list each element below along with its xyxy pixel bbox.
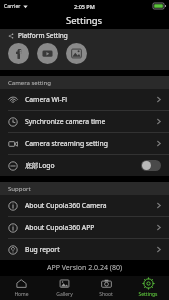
staticText: 底部Logo [25, 161, 141, 170]
button[interactable]: Weibo [66, 43, 87, 64]
staticText: About Cupola360 Camera [25, 201, 157, 210]
staticText: Settings [66, 14, 103, 27]
staticText: Carrier [4, 3, 21, 10]
staticText: 2:05 PM [74, 3, 95, 10]
button[interactable]: YouTube [37, 43, 58, 64]
staticText: Gallery [56, 291, 73, 298]
staticText: Shoot [99, 291, 113, 298]
button[interactable]: Settings [127, 276, 169, 300]
button[interactable]: Camera streaming setting [0, 133, 169, 154]
staticText: Settings [138, 291, 158, 298]
staticText: Home [14, 291, 29, 298]
button[interactable]: Gallery [43, 276, 85, 300]
button[interactable]: Home [0, 276, 43, 300]
button[interactable]: Shoot [85, 276, 127, 300]
button[interactable]: Camera Wi-Fi [0, 89, 169, 110]
button[interactable]: Facebook [8, 43, 29, 64]
button[interactable]: 底部Logo [0, 155, 169, 176]
staticText: Camera streaming setting [25, 139, 157, 148]
staticText: Camera Wi-Fi [25, 95, 157, 104]
button[interactable]: Toggle bottom logo [141, 160, 161, 171]
staticText: Support [8, 185, 31, 193]
staticText: Platform Setting [18, 31, 68, 40]
button[interactable]: Bug report [0, 239, 169, 260]
button[interactable]: About Cupola360 Camera [0, 195, 169, 216]
staticText: Synchronize camera time [25, 117, 157, 126]
staticText: APP Version 2.0.24 (80) [47, 263, 122, 273]
button[interactable]: About Cupola360 APP [0, 217, 169, 238]
staticText: Bug report [25, 245, 157, 254]
staticText: About Cupola360 APP [25, 223, 157, 232]
button[interactable]: Synchronize camera time [0, 111, 169, 132]
staticText: Camera setting [8, 79, 51, 87]
